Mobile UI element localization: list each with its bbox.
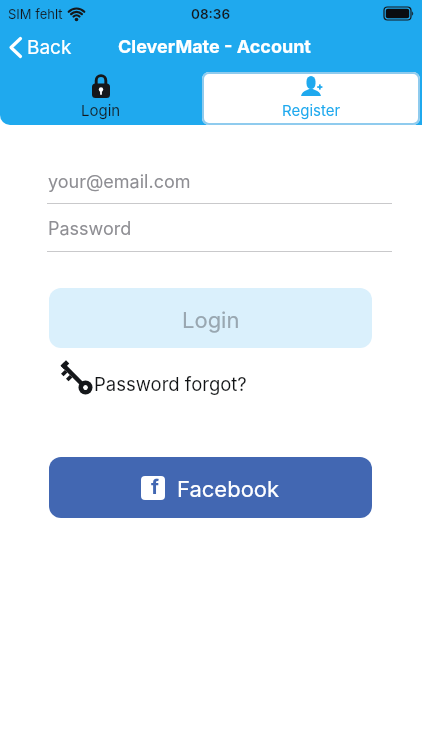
button[interactable]: Login xyxy=(0,66,202,125)
button[interactable]: Back xyxy=(9,36,72,59)
staticText: Login xyxy=(182,307,240,334)
staticText: Back xyxy=(27,36,72,59)
staticText: Login xyxy=(81,101,121,119)
staticText: Register xyxy=(282,101,341,119)
staticText: Facebook xyxy=(177,476,280,503)
staticText: your@email.com xyxy=(48,171,191,193)
button[interactable]: Register xyxy=(202,72,420,125)
staticText: SIM fehlt xyxy=(8,6,63,22)
button[interactable]: Login xyxy=(49,288,372,348)
staticText: Password xyxy=(48,218,132,240)
staticText: CleverMate - Account xyxy=(118,36,311,58)
staticText: 08:36 xyxy=(191,6,231,22)
staticText: f xyxy=(151,475,159,499)
button[interactable]: f xyxy=(49,457,372,518)
staticText: Password forgot? xyxy=(94,373,247,395)
button[interactable]: Password forgot? xyxy=(53,364,247,402)
